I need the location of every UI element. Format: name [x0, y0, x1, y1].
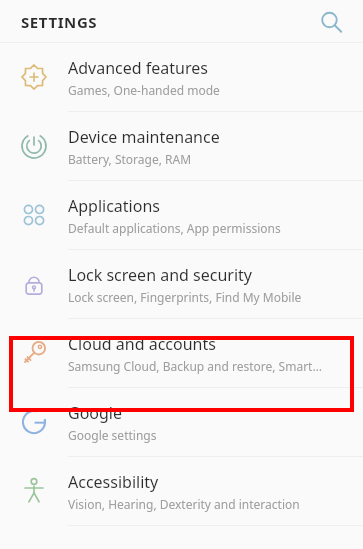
- staticText: Games, One-handed mode: [68, 82, 220, 98]
- staticText: Lock screen, Fingerprints, Find My Mobil…: [68, 289, 302, 305]
- staticText: SETTINGS: [21, 12, 98, 32]
- staticText: Samsung Cloud, Backup and restore, Smart…: [68, 358, 322, 374]
- staticText: Lock screen and security: [68, 264, 252, 286]
- staticText: Cloud and accounts: [68, 333, 216, 355]
- button[interactable]: Google: [0, 388, 363, 456]
- staticText: Advanced features: [68, 57, 208, 79]
- button[interactable]: Search: [315, 6, 347, 38]
- button[interactable]: Lock screen and security: [0, 250, 363, 318]
- staticText: Accessibility: [68, 471, 159, 493]
- button[interactable]: Applications: [0, 181, 363, 249]
- button[interactable]: Accessibility: [0, 457, 363, 525]
- staticText: Device maintenance: [68, 126, 220, 148]
- staticText: Vision, Hearing, Dexterity and interacti…: [68, 496, 300, 512]
- staticText: Default applications, App permissions: [68, 220, 281, 236]
- staticText: Applications: [68, 195, 160, 217]
- staticText: Google settings: [68, 427, 157, 443]
- staticText: Google: [68, 402, 123, 424]
- button[interactable]: Advanced features: [0, 43, 363, 111]
- button[interactable]: Cloud and accounts: [0, 319, 363, 387]
- button[interactable]: Device maintenance: [0, 112, 363, 180]
- staticText: Battery, Storage, RAM: [68, 151, 192, 167]
